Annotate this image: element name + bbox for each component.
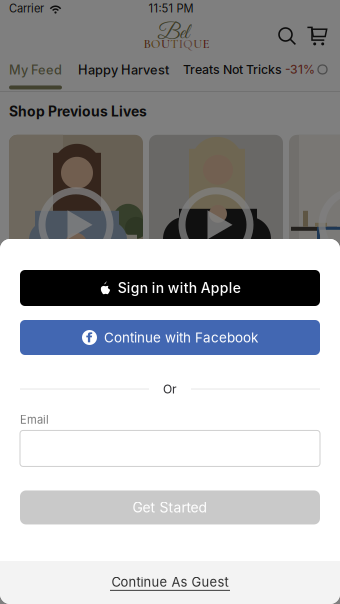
staticText: Continue with Facebook	[104, 329, 258, 346]
staticText: Email	[20, 413, 49, 426]
button[interactable]: Search	[279, 28, 296, 45]
button[interactable]: Get Started	[20, 490, 320, 524]
staticText: 11:51 PM	[148, 2, 193, 15]
staticText: Shop Previous Lives	[9, 103, 147, 120]
staticText: T	[170, 36, 178, 52]
button[interactable]: Treats Not Tricks	[176, 56, 334, 91]
button[interactable]: Continue with Facebook	[20, 320, 320, 355]
staticText: Continue As Guest	[111, 574, 228, 590]
staticText: U	[161, 36, 170, 52]
staticText: Treats Not Tricks	[183, 62, 282, 77]
staticText: Get Started	[132, 499, 207, 516]
staticText: -31%	[285, 62, 315, 77]
staticText: Q	[183, 36, 193, 52]
staticText: My Feed	[9, 62, 62, 77]
button[interactable]: Happy Harvest	[71, 56, 176, 91]
staticText: B	[143, 36, 150, 52]
button[interactable]: My Feed	[0, 56, 71, 91]
staticText: I	[179, 36, 183, 52]
button[interactable]: Play previous live	[9, 135, 143, 315]
staticText: Sign in with Apple	[118, 280, 241, 296]
staticText: Or	[163, 382, 177, 396]
staticText: U	[193, 36, 202, 52]
staticText: Happy Harvest	[78, 62, 169, 77]
staticText: Carrier	[9, 2, 44, 15]
button[interactable]: Sign in with Apple	[20, 270, 320, 306]
staticText: O	[151, 36, 161, 52]
button[interactable]: Cart	[307, 26, 327, 46]
button[interactable]: Continue As Guest	[0, 561, 340, 604]
staticText: Bel	[157, 20, 189, 47]
button[interactable]: Play previous live	[149, 135, 283, 315]
staticText: E	[202, 36, 209, 52]
button[interactable]: Play previous live	[289, 135, 340, 315]
